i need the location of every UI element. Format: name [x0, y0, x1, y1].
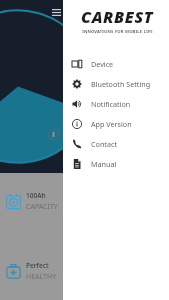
button[interactable]: Device — [63, 54, 169, 74]
staticText: Notification — [91, 99, 131, 109]
button[interactable]: App Version — [63, 114, 169, 134]
button[interactable]: Battery — [48, 129, 59, 140]
button[interactable]: Open navigation menu — [48, 4, 64, 20]
staticText: Manual — [91, 159, 117, 169]
button[interactable]: Manual — [63, 154, 169, 174]
button[interactable]: 100Ah — [0, 182, 64, 220]
staticText: Contact — [91, 139, 118, 149]
staticText: HEALTHY — [26, 272, 57, 282]
staticText: INNOVATIONS FOR MOBILE LIFE — [82, 29, 153, 35]
staticText: 100Ah — [26, 191, 46, 200]
button[interactable]: Notification — [63, 94, 169, 114]
staticText: Perfect — [26, 261, 49, 270]
button[interactable]: Bluetooth Setting — [63, 74, 169, 94]
staticText: CARBEST — [81, 6, 154, 28]
button[interactable]: Contact — [63, 134, 169, 154]
staticText: CAPACITY — [26, 202, 58, 212]
button[interactable]: Perfect — [0, 252, 64, 290]
staticText: App Version — [91, 119, 132, 129]
staticText: Bluetooth Setting — [91, 79, 151, 89]
staticText: Device — [91, 59, 114, 69]
